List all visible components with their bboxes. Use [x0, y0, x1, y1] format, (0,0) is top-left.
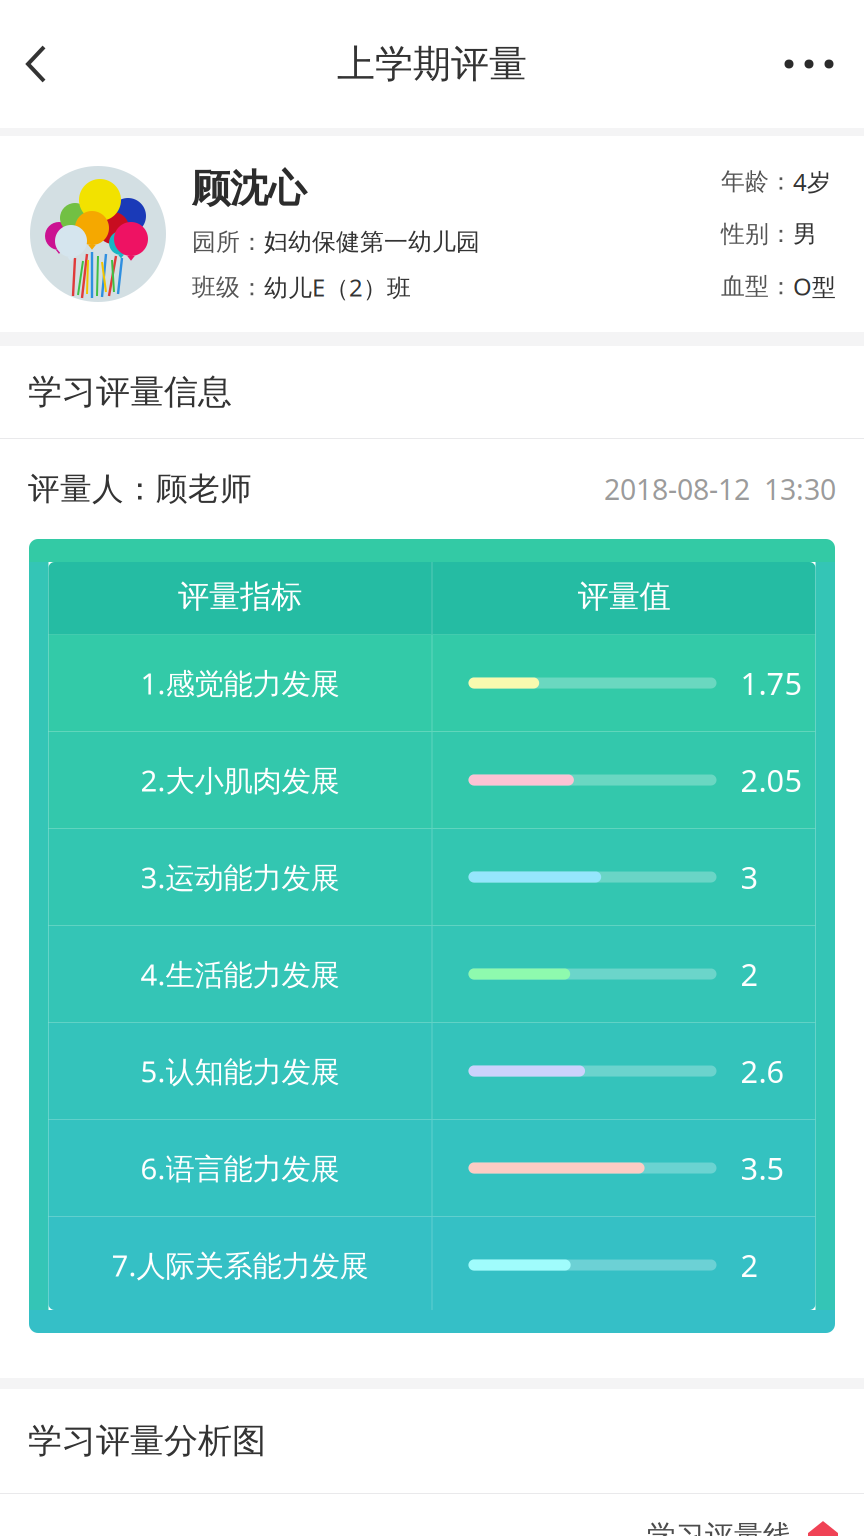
staticText: 评量值 — [577, 577, 670, 616]
button[interactable]: More options — [754, 0, 864, 128]
staticText: 1.75 — [740, 662, 802, 704]
staticText: 2 — [740, 953, 758, 995]
staticText: 7.人际关系能力发展 — [111, 1245, 368, 1285]
staticText: 4.生活能力发展 — [140, 954, 339, 994]
staticText: 男 — [793, 219, 817, 249]
staticText: 2.05 — [740, 759, 802, 801]
button[interactable]: Back — [0, 0, 74, 128]
staticText: 学习评量线 — [647, 1518, 792, 1536]
staticText: 4岁 — [793, 165, 831, 198]
staticText: 5.认知能力发展 — [140, 1051, 339, 1091]
staticText: 3 — [740, 856, 758, 898]
staticText: 妇幼保健第一幼儿园 — [264, 227, 480, 257]
staticText: 幼儿E（2）班 — [264, 271, 411, 303]
staticText: 2 — [740, 1244, 758, 1286]
staticText: 2.大小肌肉发展 — [140, 760, 339, 800]
staticText: 上学期评量 — [337, 40, 527, 88]
staticText: 顾沈心 — [192, 164, 306, 213]
staticText: 学习评量分析图 — [28, 1420, 266, 1462]
staticText: 6.语言能力发展 — [140, 1148, 339, 1188]
staticText: 3.运动能力发展 — [140, 857, 339, 897]
staticText: 3.5 — [740, 1147, 784, 1189]
staticText: O型 — [793, 270, 836, 303]
staticText: 评量人：顾老师 — [28, 469, 252, 509]
staticText: 园所： — [192, 227, 264, 257]
staticText: 年龄： — [721, 167, 793, 197]
staticText: 2.6 — [740, 1050, 784, 1092]
staticText: 学习评量信息 — [28, 371, 232, 413]
staticText: 血型： — [721, 271, 793, 301]
staticText: 性别： — [721, 219, 793, 249]
staticText: 班级： — [192, 272, 264, 302]
staticText: 2018-08-12 13:30 — [604, 470, 836, 508]
staticText: 评量指标 — [178, 577, 302, 616]
staticText: 1.感觉能力发展 — [140, 663, 339, 703]
